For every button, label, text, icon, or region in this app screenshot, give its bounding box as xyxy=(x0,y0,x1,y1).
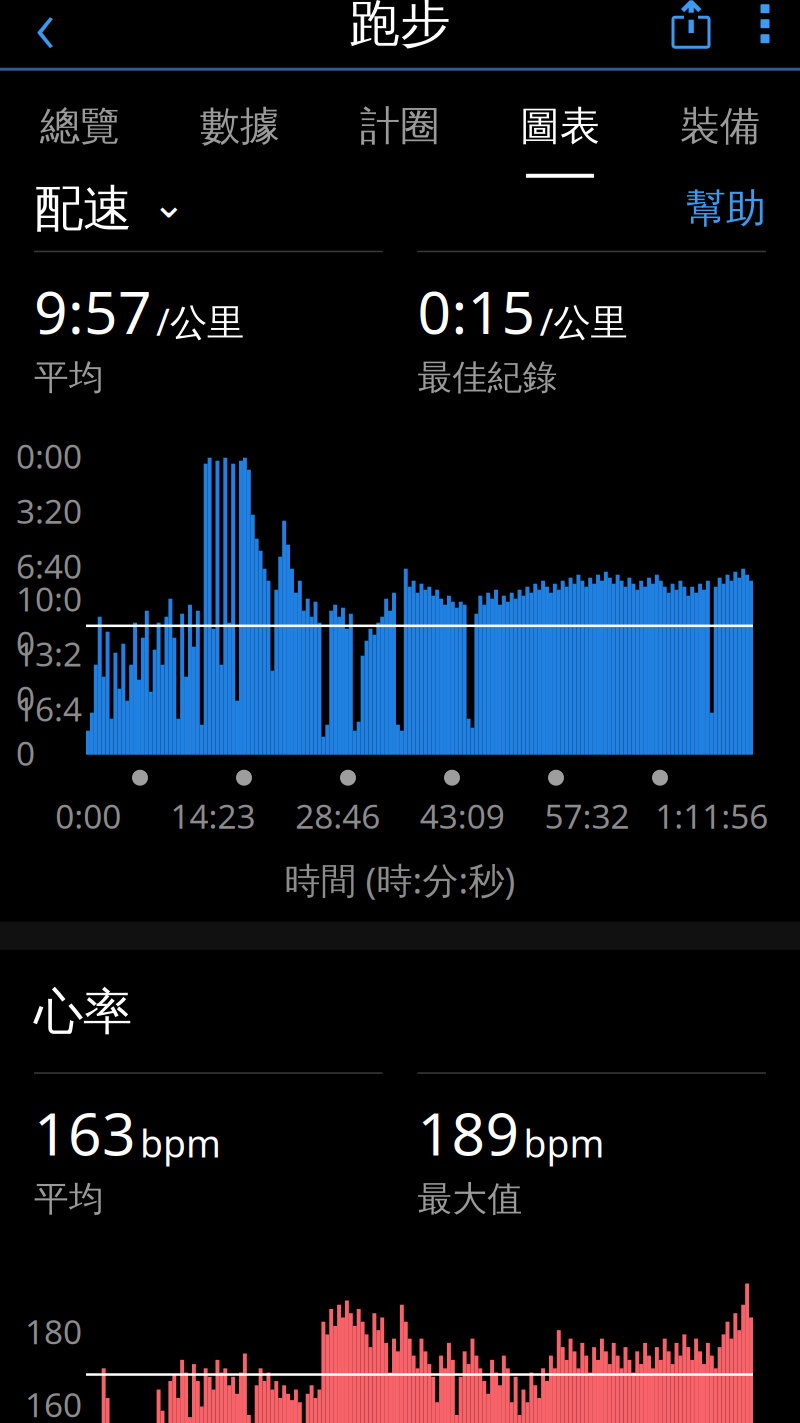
staticText: 6:40 xyxy=(16,544,82,588)
staticText: 總覽 xyxy=(40,102,120,151)
staticText: 9:57 xyxy=(34,272,152,350)
button[interactable]: Back xyxy=(0,0,90,68)
staticText: 0:00 xyxy=(16,434,82,478)
staticText: 0:00 xyxy=(55,794,121,838)
staticText: 計圈 xyxy=(360,102,440,151)
staticText: 57:32 xyxy=(544,794,629,838)
staticText: /公里 xyxy=(156,296,244,346)
button[interactable]: 計圈 xyxy=(320,71,480,177)
staticText: 43:09 xyxy=(420,794,505,838)
staticText: 最大值 xyxy=(417,1178,522,1220)
staticText: 圖表 xyxy=(520,102,600,151)
staticText: 平均 xyxy=(34,356,104,399)
button[interactable]: 總覽 xyxy=(0,71,160,177)
staticText: 0:15 xyxy=(417,272,535,350)
staticText: bpm xyxy=(140,1118,221,1168)
staticText: 平均 xyxy=(34,1178,104,1220)
staticText: 180 xyxy=(25,1309,82,1353)
staticText: 16:40 xyxy=(16,686,82,775)
staticText: 裝備 xyxy=(680,102,760,151)
button[interactable]: More options xyxy=(730,0,800,68)
staticText: 3:20 xyxy=(16,489,82,533)
button[interactable]: 裝備 xyxy=(640,71,800,177)
button[interactable]: 數據 xyxy=(160,71,320,177)
staticText: 最佳紀錄 xyxy=(417,356,557,399)
staticText: 10:00 xyxy=(16,576,82,665)
button[interactable]: 幫助 xyxy=(686,184,766,233)
staticText: 配速 xyxy=(34,178,132,239)
staticText: 189 xyxy=(417,1094,519,1172)
staticText: ‹ xyxy=(35,0,55,75)
staticText: 跑步 xyxy=(349,0,451,55)
staticText: 13:20 xyxy=(16,631,82,720)
staticText: bpm xyxy=(523,1118,604,1168)
staticText: ↑ xyxy=(672,0,710,43)
staticText: 1:11:56 xyxy=(655,794,768,838)
staticText: 數據 xyxy=(200,102,280,151)
button[interactable]: 配速 xyxy=(34,178,186,239)
staticText: 163 xyxy=(34,1094,136,1172)
staticText: ⌄ xyxy=(152,181,186,226)
staticText: 160 xyxy=(25,1382,82,1423)
staticText: 心率 xyxy=(34,982,132,1042)
staticText: /公里 xyxy=(539,296,627,346)
button[interactable]: 圖表 xyxy=(480,71,640,177)
staticText: 14:23 xyxy=(170,794,255,838)
button[interactable]: Share xyxy=(652,0,730,68)
staticText: 時間 (時:分:秒) xyxy=(284,856,515,904)
staticText: 幫助 xyxy=(686,184,766,233)
staticText: 28:46 xyxy=(295,794,380,838)
